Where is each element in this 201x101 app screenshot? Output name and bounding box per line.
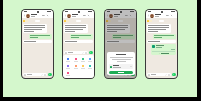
button[interactable]: Call [129, 14, 132, 17]
button[interactable]: Contact photo [109, 14, 113, 18]
button[interactable]: Back [106, 14, 109, 17]
button[interactable] [64, 65, 72, 69]
button[interactable] [65, 51, 87, 54]
button[interactable]: Call [87, 14, 90, 17]
button[interactable] [109, 71, 133, 74]
button[interactable] [64, 58, 72, 62]
button[interactable]: Voice message [172, 73, 176, 76]
button[interactable]: Contact photo [26, 14, 30, 18]
button[interactable]: Contact photo [67, 14, 71, 18]
button[interactable]: Call [46, 14, 49, 17]
button[interactable] [86, 65, 93, 69]
button[interactable] [148, 73, 170, 76]
button[interactable] [152, 45, 175, 54]
button[interactable] [24, 73, 46, 76]
button[interactable]: Voice message [48, 73, 52, 76]
button[interactable] [79, 65, 86, 69]
button[interactable]: Back [147, 14, 150, 17]
button[interactable]: Call [170, 14, 173, 17]
button[interactable] [72, 58, 79, 62]
button[interactable] [110, 65, 132, 68]
button[interactable]: Voice message [131, 73, 135, 76]
button[interactable]: Video call [125, 14, 128, 17]
button[interactable] [107, 73, 129, 76]
button[interactable]: Back [23, 14, 26, 17]
button[interactable]: Voice message [89, 51, 93, 54]
button[interactable]: Video call [166, 14, 169, 17]
button[interactable] [72, 65, 79, 69]
button[interactable] [79, 58, 86, 62]
button[interactable] [64, 72, 72, 76]
button[interactable]: Contact photo [150, 14, 154, 18]
button[interactable]: Video call [83, 14, 86, 17]
button[interactable]: Back [64, 14, 67, 17]
button[interactable]: Video call [42, 14, 45, 17]
button[interactable] [86, 58, 93, 62]
